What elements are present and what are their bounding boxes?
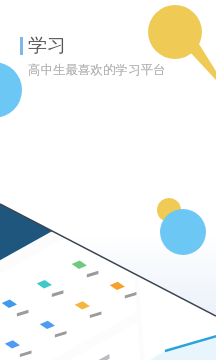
staticText: 高中生最喜欢的学习平台 [28,62,166,78]
staticText: 学习 [28,34,66,58]
